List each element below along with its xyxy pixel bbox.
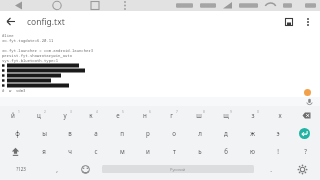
staticText: , [56,165,58,173]
staticText: # w vdm3 [2,88,26,93]
staticText: п [120,129,124,137]
button[interactable]: я [30,142,57,160]
staticText: д [224,129,228,137]
button[interactable]: Backspace [293,106,320,124]
button[interactable]: и [135,142,161,160]
staticText: config.txt [27,16,65,28]
staticText: р [146,129,150,137]
button[interactable]: Shift [0,142,30,160]
button[interactable]: ю [239,142,265,160]
button[interactable]: Emoji [71,160,100,178]
staticText: ю [250,147,255,155]
staticText: з [251,111,255,119]
staticText: л [198,129,202,137]
button[interactable]: щ [212,106,239,124]
staticText: о [172,129,176,137]
staticText: ц [37,111,41,119]
staticText: persist.fyt.showrotarywin_auto [2,53,73,58]
staticText: 7 [176,110,178,114]
button[interactable]: ж [239,124,265,142]
staticText: ! [277,147,279,155]
staticText: к [89,111,93,119]
staticText: 5 [122,110,124,114]
staticText: б [224,147,228,155]
button[interactable]: Enter [291,124,317,142]
button[interactable]: ц [26,106,52,124]
button[interactable]: Save [279,12,299,32]
staticText: ro.fyt.tagdate=6.20.11 [2,38,54,43]
button[interactable]: Voice input [306,98,313,105]
staticText: ш [196,111,202,119]
staticText: 8 [203,110,205,114]
staticText: ж [250,129,255,137]
button[interactable]: р [135,124,161,142]
staticText: sys.fyt.bluetooth.type=1 [2,58,59,63]
staticText: ы [42,129,47,137]
staticText: н [143,111,147,119]
staticText: 1 [18,110,20,114]
staticText: г [170,111,173,119]
staticText: т [173,147,176,155]
staticText: с [94,147,98,155]
button[interactable]: ы [31,124,57,142]
button[interactable]: Settings [285,160,320,178]
button[interactable]: д [213,124,239,142]
staticText: 6 [149,110,151,114]
button[interactable]: ? [291,142,320,160]
button[interactable]: ?123 [0,160,42,178]
button[interactable]: ! [265,142,291,160]
button[interactable]: ш [185,106,212,124]
staticText: ? [304,147,307,155]
button[interactable]: в [57,124,83,142]
staticText: . [270,165,272,173]
button[interactable]: Back [0,11,21,32]
staticText: а [94,129,98,137]
button[interactable]: к [78,106,104,124]
staticText: щ [223,111,229,119]
staticText: е [116,111,120,119]
staticText: х [278,111,282,119]
staticText: ?123 [16,166,26,172]
staticText: э [276,129,280,137]
staticText: 4 [96,110,98,114]
button[interactable]: , [42,160,71,178]
staticText: м [120,147,125,155]
staticText: 3 [70,110,72,114]
staticText: у [63,111,67,119]
staticText: 2 [44,110,46,114]
staticText: ф [15,129,20,137]
staticText: #line [2,33,14,38]
button[interactable]: э [265,124,291,142]
button[interactable]: More options [299,13,317,31]
button[interactable]: х [266,106,293,124]
staticText: 0 [257,110,259,114]
button[interactable]: а [83,124,109,142]
button[interactable]: б [213,142,239,160]
staticText: й [11,111,15,119]
button[interactable]: г [158,106,185,124]
staticText: и [146,147,150,155]
staticText: Русский [170,167,186,172]
button[interactable]: е [104,106,131,124]
button[interactable]: з [239,106,266,124]
staticText: ro.fyt.launcher = com.android.launcher3 [2,48,94,53]
button[interactable]: м [109,142,135,160]
button[interactable]: Space [102,165,254,173]
staticText: 9 [230,110,232,114]
button[interactable]: с [83,142,109,160]
staticText: ч [68,147,72,155]
button[interactable]: ч [57,142,83,160]
button[interactable]: о [161,124,187,142]
button[interactable]: ь [187,142,213,160]
button[interactable]: п [109,124,135,142]
button[interactable]: л [187,124,213,142]
button[interactable]: т [161,142,187,160]
button[interactable]: н [131,106,158,124]
staticText: я [42,147,46,155]
button[interactable]: ф [4,124,31,142]
button[interactable]: у [52,106,78,124]
button[interactable]: й [0,106,26,124]
staticText: ь [198,147,202,155]
staticText: в [68,129,72,137]
